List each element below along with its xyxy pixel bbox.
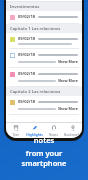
staticText: 09/02/18 (18, 99, 36, 104)
staticText: Text (12, 133, 19, 137)
button[interactable]: Bookmarks (63, 123, 82, 138)
staticText: 09/02/18 (18, 36, 36, 41)
staticText: Capitulo 1 Las relaciones familiares (10, 26, 78, 32)
staticText: Investimentos (10, 4, 40, 10)
staticText: Highlights (26, 133, 43, 137)
button[interactable]: 09/02/18 (6, 68, 82, 86)
staticText: Download or share notes (4, 125, 84, 145)
staticText: Bookmarks (64, 133, 81, 137)
button[interactable]: Notes (44, 123, 63, 138)
button[interactable]: 09/02/18 (6, 11, 82, 23)
staticText: from your smartphone (4, 148, 84, 168)
staticText: Notes (49, 133, 58, 137)
button[interactable]: Capitulo 2 Las relaciones romanticas (6, 87, 82, 96)
button[interactable]: 09/02/18 (6, 33, 82, 48)
staticText: 09/02/18 (18, 71, 36, 76)
button[interactable]: Show More (58, 78, 78, 83)
button[interactable]: Highlights (25, 123, 44, 138)
button[interactable]: Investimentos (6, 2, 82, 11)
button[interactable]: Show More (58, 59, 78, 64)
button[interactable]: Text (6, 123, 25, 138)
button[interactable]: Show More (58, 106, 78, 111)
button[interactable]: Capitulo 1 Las relaciones familiares (6, 24, 82, 33)
staticText: Capitulo 2 Las relaciones romanticas (10, 89, 78, 95)
button[interactable]: 09/02/18 (6, 96, 82, 114)
staticText: 09/02/18 (18, 52, 36, 57)
staticText: 09/02/18 (18, 14, 36, 19)
button[interactable]: 09/02/18 (6, 49, 82, 67)
